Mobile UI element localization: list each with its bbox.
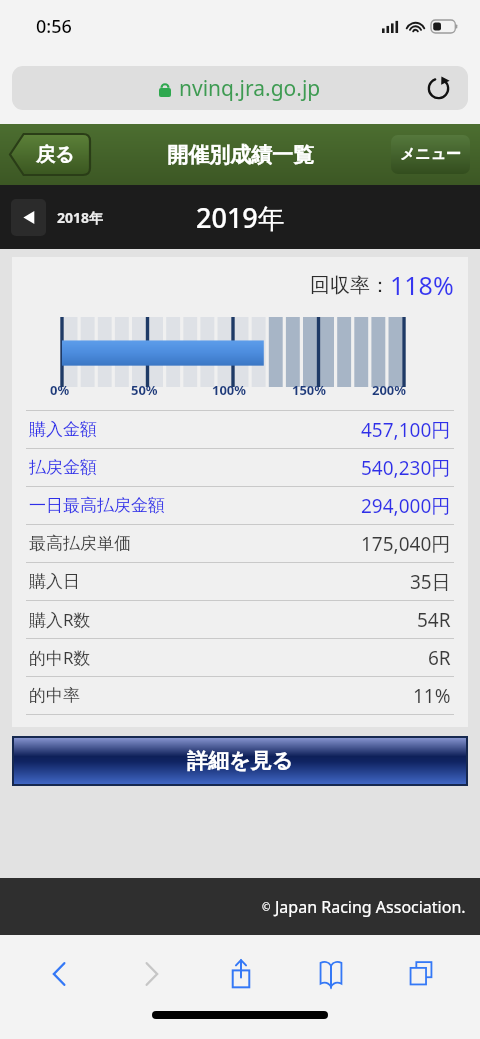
- button[interactable]: Tabs: [376, 945, 466, 1003]
- staticText: メニュー: [400, 145, 462, 164]
- staticText: 6R: [428, 645, 451, 671]
- staticText: 購入日: [29, 571, 80, 592]
- button[interactable]: 最高払戻単価: [12, 524, 468, 562]
- staticText: 詳細を見る: [187, 748, 293, 774]
- staticText: 2019年: [196, 199, 285, 236]
- staticText: 35日: [410, 569, 451, 595]
- button[interactable]: 2018年: [11, 199, 104, 236]
- staticText: 0%: [50, 381, 70, 399]
- button[interactable]: nvinq.jra.go.jp: [12, 66, 468, 110]
- button[interactable]: 購入日: [12, 562, 468, 600]
- staticText: 回収率：: [310, 273, 390, 298]
- button[interactable]: 一日最高払戻金額: [12, 486, 468, 524]
- staticText: 開催別成績一覧: [167, 142, 314, 168]
- staticText: 最高払戻単価: [29, 533, 131, 554]
- button[interactable]: Back: [14, 945, 105, 1003]
- button[interactable]: 的中率: [12, 676, 468, 714]
- staticText: 0:56: [36, 14, 72, 39]
- staticText: 200%: [372, 381, 407, 399]
- button[interactable]: 払戻金額: [12, 448, 468, 486]
- button[interactable]: 購入金額: [12, 410, 468, 448]
- button[interactable]: 戻る: [10, 134, 90, 175]
- other: Reload: [427, 77, 450, 100]
- button[interactable]: メニュー: [391, 135, 470, 174]
- staticText: 50%: [131, 381, 158, 399]
- staticText: 購入R数: [29, 608, 91, 631]
- button[interactable]: 的中R数: [12, 638, 468, 676]
- staticText: 購入金額: [29, 419, 97, 440]
- staticText: 100%: [212, 381, 247, 399]
- staticText: 175,040円: [361, 531, 451, 557]
- button[interactable]: Share: [196, 945, 286, 1003]
- staticText: 的中R数: [29, 646, 91, 669]
- button[interactable]: Bookmarks: [286, 945, 376, 1003]
- staticText: 457,100円: [361, 417, 451, 443]
- button[interactable]: 購入R数: [12, 600, 468, 638]
- staticText: nvinq.jra.go.jp: [179, 74, 321, 103]
- staticText: 2018年: [57, 208, 104, 227]
- staticText: 11%: [413, 683, 451, 709]
- staticText: 294,000円: [361, 493, 451, 519]
- staticText: 118%: [390, 268, 454, 302]
- staticText: 的中率: [29, 685, 80, 706]
- staticText: 540,230円: [361, 455, 451, 481]
- staticText: Japan Racing Association.: [275, 896, 466, 918]
- staticText: ©: [262, 900, 271, 914]
- staticText: 54R: [417, 607, 451, 633]
- staticText: 一日最高払戻金額: [29, 495, 165, 516]
- staticText: 戻る: [36, 143, 75, 167]
- button[interactable]: Forward: [105, 945, 196, 1003]
- button[interactable]: 詳細を見る: [14, 738, 466, 784]
- staticText: 150%: [292, 381, 327, 399]
- staticText: 払戻金額: [29, 457, 97, 478]
